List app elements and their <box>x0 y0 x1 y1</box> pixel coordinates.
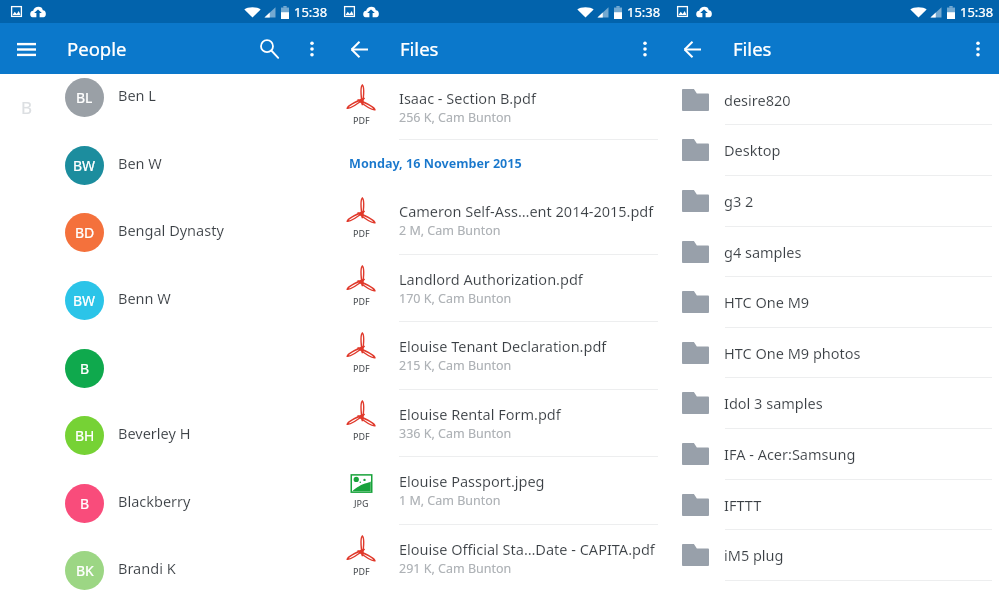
button[interactable]: HTC One M9 photos <box>666 327 999 378</box>
staticText: 2 M, Cam Bunton <box>399 222 501 239</box>
staticText: Cameron Self-Ass…ent 2014-2015.pdf <box>399 201 654 221</box>
staticText: HTC One M9 <box>724 292 810 312</box>
staticText: HTC One M9 photos <box>724 343 861 363</box>
button[interactable]: PDF <box>333 389 666 457</box>
staticText: g4 samples <box>724 242 802 262</box>
button[interactable]: Idol 3 samples <box>666 377 999 428</box>
staticText: JPG <box>354 497 369 509</box>
staticText: B <box>21 96 33 119</box>
button[interactable]: PDF <box>333 524 666 592</box>
button[interactable]: PDF <box>333 75 666 139</box>
button[interactable]: B <box>0 334 333 402</box>
button[interactable]: Navigate up <box>670 27 714 71</box>
button[interactable]: g3 2 <box>666 175 999 226</box>
staticText: Ben W <box>118 153 162 173</box>
staticText: Bengal Dynasty <box>118 220 224 240</box>
staticText: g3 2 <box>724 191 754 211</box>
staticText: PDF <box>353 114 370 126</box>
staticText: Desktop <box>724 140 781 160</box>
button[interactable]: desire820 <box>666 74 999 125</box>
staticText: Landlord Authorization.pdf <box>399 269 583 289</box>
staticText: Files <box>400 36 439 61</box>
staticText: PDF <box>353 295 370 307</box>
button[interactable]: BH <box>0 401 333 469</box>
staticText: 256 K, Cam Bunton <box>399 109 512 126</box>
button[interactable]: BK <box>0 536 333 592</box>
button[interactable]: HTC One M9 <box>666 276 999 327</box>
staticText: PDF <box>353 227 370 239</box>
staticText: PDF <box>353 430 370 442</box>
staticText: People <box>67 36 127 61</box>
staticText: Idol 3 samples <box>724 393 823 413</box>
button[interactable]: BL <box>0 63 333 131</box>
staticText: PDF <box>353 565 370 577</box>
button[interactable]: Navigate up <box>337 27 381 71</box>
staticText: Ben L <box>118 85 156 105</box>
button[interactable]: PDF <box>333 254 666 322</box>
staticText: B <box>80 494 90 513</box>
staticText: BW <box>73 291 96 310</box>
staticText: IFTTT <box>724 495 762 515</box>
button[interactable]: PDF <box>333 186 666 254</box>
button[interactable]: More options <box>624 26 665 71</box>
staticText: BL <box>76 88 93 107</box>
staticText: Elouise Tenant Declaration.pdf <box>399 336 607 356</box>
staticText: B <box>80 359 90 378</box>
staticText: Monday, 16 November 2015 <box>349 155 522 172</box>
staticText: Benn W <box>118 288 171 308</box>
staticText: Elouise Passport.jpeg <box>399 471 545 491</box>
staticText: 215 K, Cam Bunton <box>399 357 512 374</box>
button[interactable]: PDF <box>333 321 666 389</box>
staticText: 15:38 <box>627 3 661 21</box>
button[interactable]: g4 samples <box>666 226 999 277</box>
staticText: Elouise Rental Form.pdf <box>399 404 561 424</box>
button[interactable]: JPG <box>333 456 666 524</box>
staticText: BH <box>75 426 95 445</box>
button[interactable]: BW <box>0 131 333 199</box>
staticText: 15:38 <box>960 3 994 21</box>
staticText: iM5 plug <box>724 545 784 565</box>
button[interactable]: Desktop <box>666 124 999 175</box>
button[interactable]: IFTTT <box>666 479 999 530</box>
button[interactable]: B <box>0 469 333 537</box>
staticText: Blackberry <box>118 491 191 511</box>
button[interactable]: Open navigation menu <box>4 27 48 71</box>
staticText: BK <box>76 561 94 580</box>
staticText: BW <box>73 156 96 175</box>
staticText: 336 K, Cam Bunton <box>399 425 512 442</box>
staticText: Elouise Official Sta…Date - CAPITA.pdf <box>399 539 655 559</box>
staticText: Files <box>733 36 772 61</box>
staticText: BD <box>75 223 95 242</box>
button[interactable]: IFA - Acer:Samsung <box>666 428 999 479</box>
staticText: Isaac - Section B.pdf <box>399 88 536 108</box>
button[interactable]: Search <box>246 26 291 71</box>
staticText: 291 K, Cam Bunton <box>399 560 512 577</box>
staticText: desire820 <box>724 90 791 110</box>
button[interactable]: BD <box>0 198 333 266</box>
staticText: Beverley H <box>118 423 191 443</box>
staticText: 15:38 <box>294 3 328 21</box>
staticText: 170 K, Cam Bunton <box>399 290 512 307</box>
button[interactable]: BW <box>0 266 333 334</box>
button[interactable]: More options <box>291 26 332 71</box>
staticText: PDF <box>353 362 370 374</box>
staticText: Brandi K <box>118 558 176 578</box>
staticText: 1 M, Cam Bunton <box>399 492 501 509</box>
button[interactable]: iM5 plug <box>666 529 999 580</box>
button[interactable]: More options <box>957 26 998 71</box>
staticText: IFA - Acer:Samsung <box>724 444 856 464</box>
